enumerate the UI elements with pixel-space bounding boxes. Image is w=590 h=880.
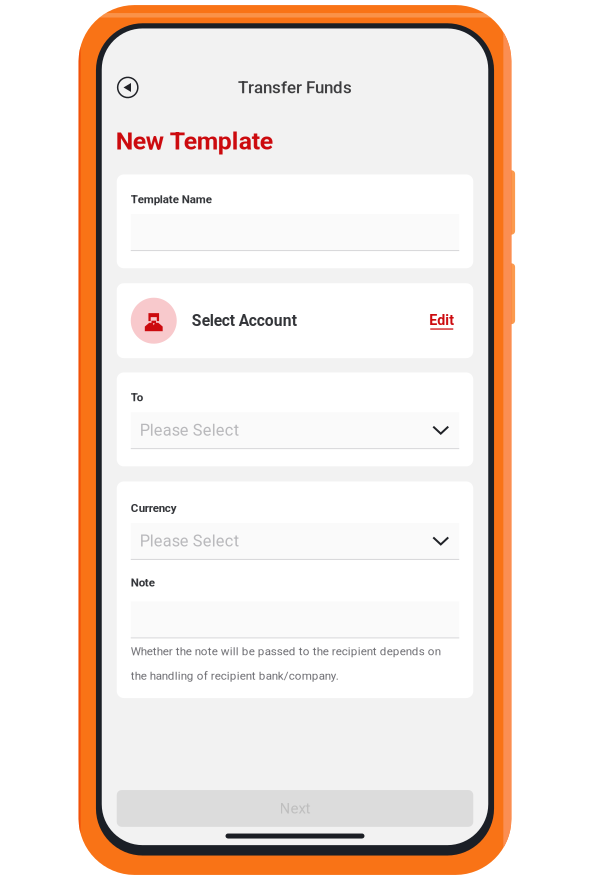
staticText: Select Account bbox=[192, 312, 297, 330]
staticText: Note bbox=[131, 576, 155, 589]
staticText: Edit bbox=[429, 312, 454, 328]
staticText: Next bbox=[279, 800, 310, 817]
staticText: the handling of recipient bank/company. bbox=[131, 669, 339, 683]
staticText: Please Select bbox=[140, 531, 239, 550]
staticText: Whether the note will be passed to the r… bbox=[131, 644, 441, 658]
staticText: Transfer Funds bbox=[238, 77, 352, 97]
staticText: Currency bbox=[131, 501, 177, 515]
staticText: Template Name bbox=[131, 193, 212, 206]
staticText: Please Select bbox=[140, 421, 239, 440]
button[interactable]: Select Account bbox=[117, 283, 473, 358]
staticText: To bbox=[131, 391, 143, 404]
button[interactable]: Back bbox=[110, 69, 146, 105]
staticText: New Template bbox=[116, 126, 273, 155]
